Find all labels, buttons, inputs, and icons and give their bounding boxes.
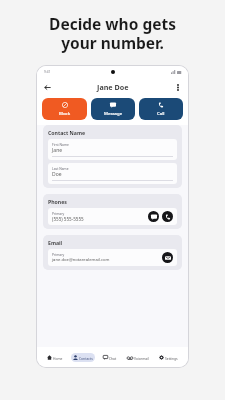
- staticText: Block: [59, 110, 71, 116]
- staticText: Jane: [52, 147, 63, 154]
- staticText: Phones: [48, 198, 67, 205]
- staticText: Email: [48, 239, 63, 246]
- button[interactable]: Contacts: [71, 353, 95, 362]
- button[interactable]: More options: [172, 81, 184, 93]
- staticText: Contacts: [79, 356, 93, 360]
- button[interactable]: Call: [162, 211, 173, 222]
- button[interactable]: Message: [91, 98, 135, 120]
- staticText: Doe: [52, 171, 62, 178]
- button[interactable]: Home: [45, 353, 65, 362]
- staticText: Jane Doe: [97, 82, 129, 92]
- button[interactable]: Block: [42, 98, 87, 120]
- staticText: Contact Name: [48, 129, 86, 136]
- staticText: Chat: [109, 356, 117, 360]
- staticText: Last Name: [52, 166, 69, 170]
- button[interactable]: Call: [139, 98, 183, 120]
- staticText: Decide who gets your number.: [0, 13, 225, 53]
- button[interactable]: Voicemail: [125, 354, 151, 362]
- button[interactable]: Back: [41, 81, 53, 93]
- staticText: Call: [157, 110, 165, 116]
- button[interactable]: Message: [148, 211, 159, 222]
- staticText: Home: [53, 356, 63, 360]
- button[interactable]: Last Name: [48, 163, 177, 184]
- button[interactable]: Chat: [101, 353, 119, 362]
- staticText: Primary: [52, 211, 65, 215]
- staticText: Message: [104, 110, 123, 116]
- staticText: Primary: [52, 252, 65, 256]
- button[interactable]: First Name: [48, 139, 177, 160]
- staticText: 9:41: [44, 70, 51, 74]
- staticText: jane.doe@notarealemail.com: [52, 257, 110, 263]
- staticText: (555) 555-5555: [52, 216, 84, 222]
- staticText: Voicemail: [134, 356, 149, 360]
- staticText: Settings: [165, 356, 178, 360]
- button[interactable]: Settings: [157, 353, 180, 362]
- staticText: First Name: [52, 142, 69, 146]
- button[interactable]: Send email: [162, 252, 173, 263]
